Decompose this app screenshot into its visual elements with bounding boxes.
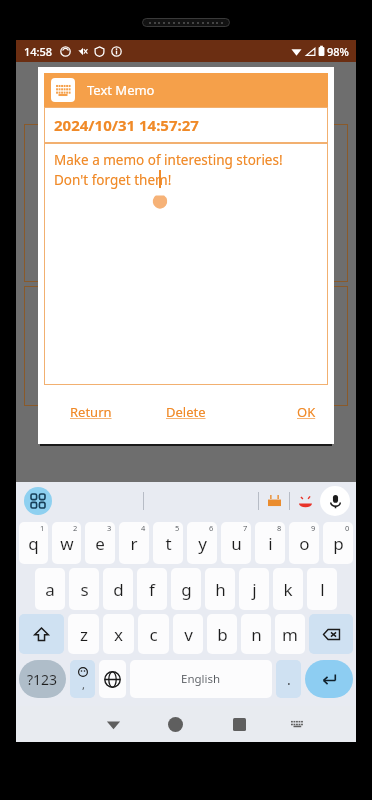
staticText: n (251, 623, 262, 646)
staticText: v (184, 623, 193, 646)
button[interactable]: a (35, 568, 65, 610)
button[interactable]: Back (84, 706, 143, 742)
staticText: k (283, 578, 293, 601)
staticText: . (287, 670, 291, 689)
staticText: l (320, 578, 325, 601)
staticText: 2 (73, 523, 78, 533)
button[interactable]: Emoji and comma (70, 660, 95, 698)
button[interactable]: v (173, 614, 203, 654)
button[interactable]: f (137, 568, 167, 610)
button[interactable]: i (255, 522, 285, 564)
button[interactable]: Emoji (290, 486, 320, 516)
button[interactable]: q (19, 522, 48, 564)
staticText: r (130, 532, 138, 555)
staticText: a (45, 578, 55, 601)
button[interactable]: g (171, 568, 201, 610)
staticText: 2024/10/31 14:57:27 (54, 115, 199, 135)
staticText: i (268, 532, 273, 555)
staticText: Don't forget them! (54, 171, 172, 189)
staticText: y (198, 532, 207, 555)
button[interactable]: Clipboard (259, 486, 289, 516)
button[interactable]: z (68, 614, 99, 654)
staticText: Return (70, 403, 112, 421)
button[interactable]: r (119, 522, 149, 564)
button[interactable]: Change language (99, 660, 126, 698)
staticText: 8 (277, 523, 282, 533)
button[interactable]: k (273, 568, 303, 610)
staticText: 98% (327, 44, 349, 59)
staticText: g (181, 578, 192, 601)
staticText: 5 (175, 523, 180, 533)
staticText: w (60, 532, 74, 555)
staticText: 1 (40, 523, 45, 533)
button[interactable]: ?123 (19, 660, 66, 698)
staticText: 6 (209, 523, 214, 533)
staticText: o (299, 532, 310, 555)
button[interactable]: l (307, 568, 337, 610)
button[interactable]: Voice input (320, 486, 350, 516)
button[interactable]: s (69, 568, 99, 610)
staticText: OK (297, 403, 316, 421)
button[interactable]: y (187, 522, 217, 564)
button[interactable]: c (138, 614, 169, 654)
staticText: f (149, 578, 155, 601)
button[interactable]: Delete (138, 385, 233, 438)
button[interactable]: w (52, 522, 81, 564)
button[interactable]: Backspace (309, 614, 353, 654)
staticText: 4 (141, 523, 146, 533)
button[interactable]: Return (44, 385, 138, 438)
button[interactable]: Keyboard layout (270, 706, 326, 742)
staticText: q (28, 532, 39, 555)
staticText: u (231, 532, 242, 555)
button[interactable]: Shift (19, 614, 64, 654)
button[interactable]: . (276, 660, 301, 698)
staticText: t (165, 532, 172, 555)
staticText: s (80, 578, 89, 601)
button[interactable]: Apps (24, 487, 52, 515)
button[interactable]: Enter (305, 660, 353, 698)
staticText: d (113, 578, 124, 601)
staticText: e (95, 532, 105, 555)
staticText: j (252, 578, 257, 601)
button[interactable]: Recent apps (208, 706, 270, 742)
button[interactable]: English (130, 660, 272, 698)
button[interactable]: n (241, 614, 271, 654)
staticText: c (149, 623, 158, 646)
button[interactable]: t (153, 522, 183, 564)
button[interactable]: b (207, 614, 237, 654)
button[interactable]: Text Memo (44, 73, 328, 107)
button[interactable]: x (103, 614, 134, 654)
staticText: z (80, 623, 88, 646)
staticText: 14:58 (24, 44, 53, 59)
staticText: m (282, 623, 298, 646)
staticText: Make a memo of interesting stories! (54, 151, 283, 169)
staticText: English (181, 671, 221, 687)
staticText: x (114, 623, 123, 646)
button[interactable]: j (239, 568, 269, 610)
button[interactable]: h (205, 568, 235, 610)
staticText: b (217, 623, 228, 646)
button[interactable]: d (103, 568, 133, 610)
staticText: Delete (166, 403, 206, 421)
staticText: 7 (243, 523, 248, 533)
button[interactable]: o (289, 522, 319, 564)
staticText: p (333, 532, 344, 555)
button[interactable]: e (85, 522, 115, 564)
staticText: Text Memo (87, 81, 155, 99)
button[interactable]: p (323, 522, 353, 564)
staticText: , (82, 677, 85, 692)
staticText: ?123 (27, 670, 58, 689)
staticText: h (215, 578, 226, 601)
staticText: 9 (311, 523, 316, 533)
button[interactable]: Home (143, 706, 208, 742)
staticText: 3 (107, 523, 112, 533)
button[interactable]: m (275, 614, 305, 654)
staticText: 0 (345, 523, 350, 533)
button[interactable]: OK (233, 385, 328, 438)
button[interactable]: u (221, 522, 251, 564)
